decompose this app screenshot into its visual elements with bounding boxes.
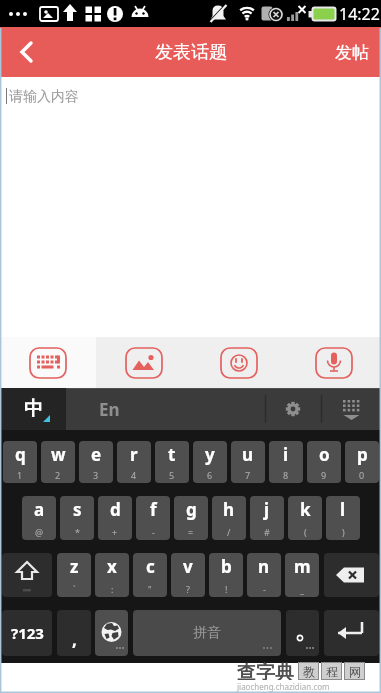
staticText: e: [91, 443, 102, 466]
staticText: i: [283, 443, 289, 466]
staticText: q: [15, 443, 26, 466]
staticText: 程: [326, 664, 338, 679]
button[interactable]: [95, 610, 128, 656]
button[interactable]: g: [174, 496, 208, 540]
button[interactable]: i: [269, 441, 303, 483]
staticText: 6: [207, 469, 213, 481]
staticText: ": [148, 583, 152, 595]
button[interactable]: [324, 553, 379, 597]
staticText: 9: [321, 469, 327, 481]
staticText: +: [112, 526, 118, 538]
button[interactable]: c: [133, 553, 167, 597]
staticText: ): [342, 526, 345, 538]
staticText: 14:22: [339, 3, 380, 25]
button[interactable]: o: [307, 441, 341, 483]
staticText: 请输入内容: [9, 88, 79, 106]
button[interactable]: En: [79, 388, 139, 430]
staticText: !: [225, 583, 228, 595]
button[interactable]: 中: [0, 388, 66, 430]
button[interactable]: z: [57, 553, 91, 597]
staticText: *: [75, 526, 80, 538]
staticText: s: [73, 498, 82, 521]
button[interactable]: [286, 337, 381, 388]
staticText: y: [205, 443, 215, 466]
staticText: 查字典: [237, 661, 294, 680]
button[interactable]: x: [95, 553, 129, 597]
staticText: 4: [131, 469, 137, 481]
button[interactable]: s: [60, 496, 94, 540]
button[interactable]: [191, 337, 286, 388]
staticText: m: [294, 555, 311, 578]
button[interactable]: l: [326, 496, 360, 540]
button[interactable]: j: [250, 496, 284, 540]
staticText: ?123: [11, 623, 44, 643]
staticText: a: [34, 498, 45, 521]
staticText: -: [152, 526, 155, 538]
button[interactable]: e: [79, 441, 113, 483]
staticText: /: [227, 526, 231, 538]
staticText: ,: [72, 628, 77, 651]
staticText: `: [73, 583, 76, 595]
button[interactable]: p: [345, 441, 379, 483]
button[interactable]: r: [117, 441, 151, 483]
button[interactable]: [322, 388, 381, 430]
staticText: t: [168, 443, 176, 466]
staticText: g: [186, 498, 197, 521]
staticText: @: [35, 526, 44, 538]
staticText: 中: [24, 397, 43, 421]
staticText: 8: [283, 469, 289, 481]
button[interactable]: ,: [57, 610, 91, 656]
button[interactable]: [0, 27, 48, 77]
staticText: h: [223, 498, 235, 521]
staticText: 1: [17, 469, 23, 481]
staticText: 拼音: [193, 624, 221, 642]
button[interactable]: v: [171, 553, 205, 597]
button[interactable]: d: [98, 496, 132, 540]
button[interactable]: [286, 610, 319, 656]
button[interactable]: n: [247, 553, 281, 597]
staticText: 3: [93, 469, 99, 481]
button[interactable]: b: [209, 553, 243, 597]
button[interactable]: [0, 337, 96, 388]
staticText: =: [188, 526, 194, 538]
button[interactable]: [96, 337, 191, 388]
staticText: 教: [303, 664, 315, 679]
staticText: 网: [349, 664, 361, 679]
button[interactable]: 拼音: [133, 610, 281, 656]
button[interactable]: [324, 610, 379, 656]
staticText: En: [99, 398, 120, 421]
staticText: n: [258, 555, 270, 578]
button[interactable]: a: [22, 496, 56, 540]
staticText: 发帖: [335, 42, 369, 63]
button[interactable]: [2, 553, 52, 597]
button[interactable]: h: [212, 496, 246, 540]
staticText: 发表话题: [155, 41, 227, 64]
staticText: c: [146, 555, 155, 578]
staticText: 2: [55, 469, 61, 481]
button[interactable]: u: [231, 441, 265, 483]
button[interactable]: t: [155, 441, 189, 483]
button[interactable]: ?123: [2, 610, 52, 656]
button[interactable]: w: [41, 441, 75, 483]
staticText: _: [300, 583, 304, 595]
button[interactable]: y: [193, 441, 227, 483]
button[interactable]: [266, 388, 321, 430]
staticText: r: [130, 443, 138, 466]
staticText: k: [300, 498, 311, 521]
staticText: j: [264, 498, 270, 521]
button[interactable]: k: [288, 496, 322, 540]
staticText: w: [51, 443, 66, 466]
staticText: 5: [169, 469, 175, 481]
staticText: u: [242, 443, 254, 466]
staticText: ?: [186, 583, 190, 595]
button[interactable]: q: [3, 441, 37, 483]
button[interactable]: 发帖: [323, 28, 381, 77]
button[interactable]: m: [285, 553, 319, 597]
staticText: p: [357, 443, 368, 466]
staticText: l: [340, 498, 346, 521]
button[interactable]: f: [136, 496, 170, 540]
staticText: f: [150, 498, 157, 521]
staticText: jiaocheng.chazidian.com: [237, 681, 330, 692]
staticText: 0: [359, 469, 365, 481]
staticText: b: [221, 555, 232, 578]
